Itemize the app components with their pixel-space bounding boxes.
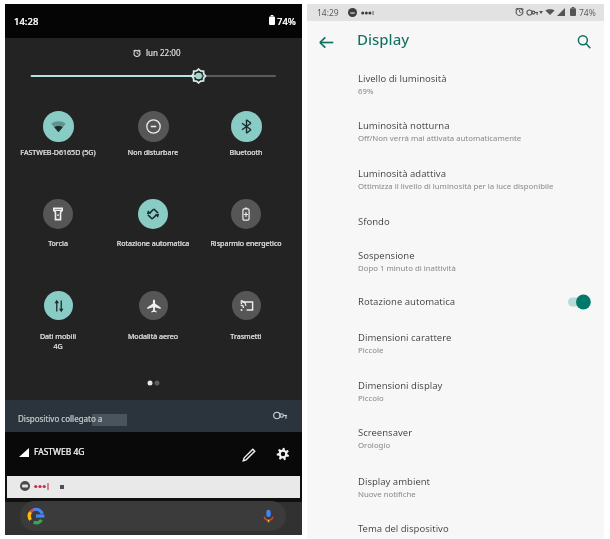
staticText: Screensaver bbox=[358, 426, 413, 439]
staticText: Tema del dispositivo bbox=[358, 522, 449, 535]
button[interactable]: Screensaver bbox=[307, 426, 604, 470]
button[interactable]: Tema del dispositivo bbox=[307, 522, 604, 539]
staticText: 74% bbox=[579, 7, 596, 19]
staticText: Luminosità adattiva bbox=[358, 167, 446, 180]
button[interactable]: Modalità aereo bbox=[106, 291, 200, 350]
staticText: Off/Non verrà mai attivata automaticamen… bbox=[358, 133, 522, 144]
button[interactable]: Dimensioni carattere bbox=[307, 331, 604, 375]
staticText: Ottimizza il livello di luminosità per l… bbox=[358, 181, 554, 192]
staticText: Orologio bbox=[358, 440, 391, 451]
button[interactable]: Edit bbox=[241, 447, 257, 463]
staticText: Display ambient bbox=[358, 475, 431, 488]
staticText: Rotazione automatica bbox=[106, 238, 200, 248]
button[interactable]: Livello di luminosità bbox=[307, 72, 604, 116]
button[interactable]: Search bbox=[20, 501, 286, 531]
button[interactable]: Rotazione automatica bbox=[106, 199, 200, 259]
staticText: lun 22:00 bbox=[146, 47, 181, 58]
button[interactable]: Torcia bbox=[11, 199, 105, 259]
staticText: Modalità aereo bbox=[106, 331, 200, 341]
staticText: Piccole bbox=[358, 345, 384, 356]
staticText: Rotazione automatica bbox=[358, 295, 456, 308]
staticText: Sfondo bbox=[358, 215, 390, 228]
staticText: Luminosità notturna bbox=[358, 119, 450, 132]
staticText: Trasmetti bbox=[199, 331, 293, 341]
button[interactable]: Trasmetti bbox=[199, 291, 293, 350]
staticText: 4G bbox=[11, 341, 105, 351]
button[interactable]: Bluetooth bbox=[199, 111, 293, 172]
button[interactable]: Luminosità adattiva bbox=[307, 167, 604, 211]
staticText: Bluetooth bbox=[199, 147, 293, 157]
staticText: Non disturbare bbox=[106, 147, 200, 157]
button[interactable]: Risparmio energetico bbox=[199, 199, 293, 259]
staticText: Dati mobili bbox=[11, 331, 105, 341]
button[interactable]: Back bbox=[314, 30, 338, 54]
staticText: 14:29 bbox=[317, 7, 339, 19]
staticText: Risparmio energetico bbox=[199, 238, 293, 248]
button[interactable]: Sospensione bbox=[307, 249, 604, 293]
staticText: 74% bbox=[277, 15, 296, 28]
staticText: Torcia bbox=[11, 238, 105, 248]
button[interactable]: Sfondo bbox=[307, 215, 604, 247]
staticText: Dispositivo collegato a bbox=[18, 413, 103, 424]
staticText: Livello di luminosità bbox=[358, 72, 447, 85]
button[interactable]: Dimensioni display bbox=[307, 379, 604, 423]
button[interactable]: FASTWEB-D6165D (5G) bbox=[11, 111, 105, 172]
staticText: 69% bbox=[358, 86, 374, 97]
button[interactable]: Rotazione automatica bbox=[307, 295, 604, 327]
staticText: FASTWEB 4G bbox=[34, 446, 85, 458]
button[interactable]: Luminosità notturna bbox=[307, 119, 604, 163]
staticText: FASTWEB-D6165D (5G) bbox=[11, 147, 105, 157]
button[interactable]: Non disturbare bbox=[106, 111, 200, 172]
staticText: Display bbox=[357, 29, 410, 49]
staticText: Dopo 1 minuto di inattività bbox=[358, 263, 456, 274]
button[interactable]: Dati mobili bbox=[11, 291, 105, 350]
staticText: Piccolo bbox=[358, 393, 384, 404]
staticText: Dimensioni display bbox=[358, 379, 443, 392]
staticText: 14:28 bbox=[14, 15, 39, 28]
button[interactable]: Display ambient bbox=[307, 475, 604, 519]
button[interactable]: Settings bbox=[276, 447, 290, 461]
button[interactable]: Search bbox=[572, 30, 596, 54]
staticText: Dimensioni carattere bbox=[358, 331, 452, 344]
button[interactable]: Dispositivo collegato a bbox=[5, 400, 302, 432]
staticText: Nuove notifiche bbox=[358, 489, 416, 500]
staticText: Sospensione bbox=[358, 249, 415, 262]
